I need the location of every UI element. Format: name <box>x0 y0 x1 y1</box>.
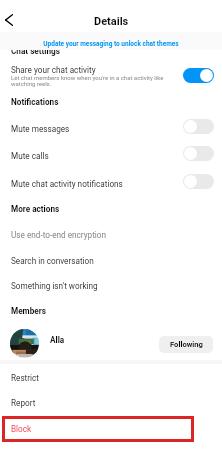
staticText: Use end-to-end encryption <box>11 230 107 240</box>
staticText: Something isn't working <box>11 281 98 291</box>
button[interactable]: Block <box>0 416 222 441</box>
staticText: Notifications <box>11 97 59 107</box>
staticText: Let chat members know when you're in a c… <box>11 74 164 87</box>
button[interactable]: Share your chat activity <box>183 68 214 83</box>
staticText: Details <box>94 15 129 28</box>
staticText: Share your chat activity <box>11 65 96 75</box>
staticText: Alla <box>50 335 65 345</box>
button[interactable]: Mute chat activity notifications <box>0 171 222 196</box>
button[interactable]: Mute messages <box>183 119 214 134</box>
button[interactable]: Use end-to-end encryption <box>0 222 222 247</box>
staticText: Mute messages <box>11 124 70 134</box>
button[interactable]: Mute chat activity notifications <box>183 174 214 189</box>
button[interactable]: Following <box>159 336 213 353</box>
staticText: Mute calls <box>11 151 49 161</box>
staticText: More actions <box>11 204 60 214</box>
button[interactable]: Report <box>0 390 222 415</box>
staticText: Following <box>170 340 203 349</box>
button[interactable]: Mute messages <box>0 116 222 141</box>
staticText: Mute chat activity notifications <box>11 179 123 189</box>
staticText: Restrict <box>11 373 40 383</box>
button[interactable]: Mute calls <box>0 143 222 168</box>
staticText: Update your messaging to unlock chat the… <box>43 40 179 48</box>
button[interactable]: Share your chat activity <box>0 60 222 90</box>
button[interactable]: Update your messaging to unlock chat the… <box>0 32 222 50</box>
button[interactable]: Restrict <box>0 365 222 390</box>
staticText: Report <box>11 398 36 408</box>
button[interactable]: Mute calls <box>183 146 214 161</box>
button[interactable]: Back <box>0 6 23 34</box>
staticText: Members <box>11 306 46 316</box>
staticText: Search in conversation <box>11 256 94 266</box>
button[interactable]: Alla <box>0 327 222 359</box>
staticText: Chat settings <box>11 46 60 56</box>
button[interactable]: Search in conversation <box>0 248 222 273</box>
staticText: Block <box>11 424 32 434</box>
button[interactable]: Something isn't working <box>0 273 222 298</box>
